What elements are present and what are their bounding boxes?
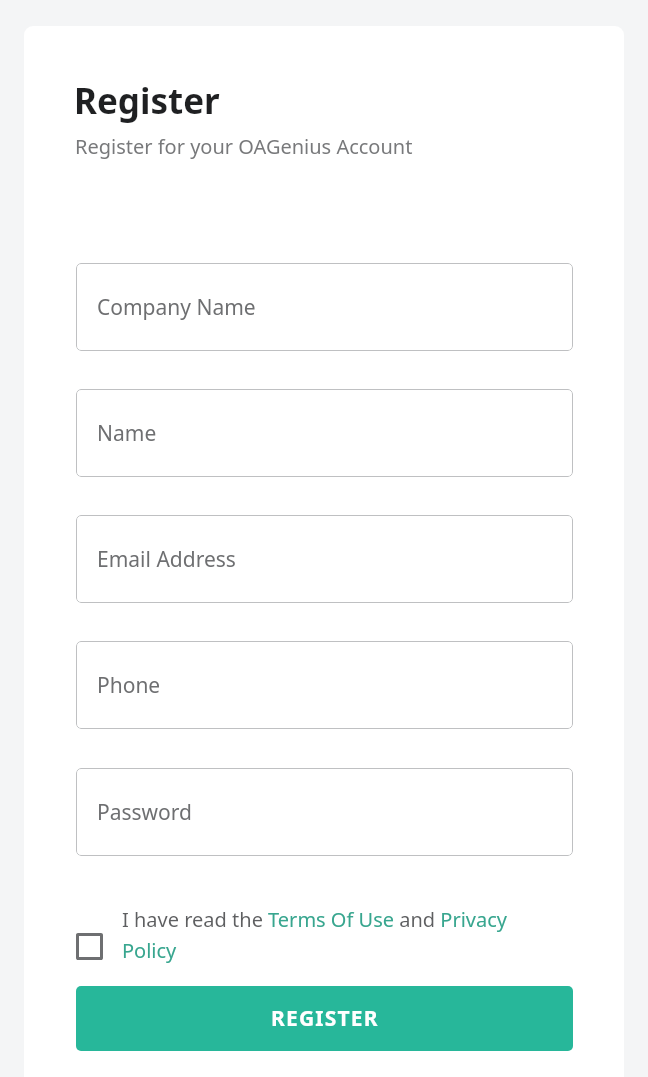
staticText: Phone bbox=[97, 671, 161, 700]
button[interactable]: REGISTER bbox=[76, 986, 573, 1051]
staticText: Name bbox=[97, 419, 157, 448]
staticText: REGISTER bbox=[271, 1004, 379, 1033]
staticText: Password bbox=[97, 798, 192, 827]
button[interactable]: Name bbox=[76, 389, 573, 477]
button[interactable]: Accept terms checkbox bbox=[76, 906, 573, 964]
staticText: Register for your OAGenius Account bbox=[75, 133, 413, 160]
other: Accept terms checkbox bbox=[76, 933, 103, 960]
button[interactable]: Phone bbox=[76, 641, 573, 729]
staticText: Email Address bbox=[97, 545, 236, 574]
button[interactable]: Email Address bbox=[76, 515, 573, 603]
button[interactable]: Password bbox=[76, 768, 573, 856]
button[interactable]: Company Name bbox=[76, 263, 573, 351]
staticText: Company Name bbox=[97, 293, 256, 322]
staticText: Register bbox=[74, 77, 220, 125]
staticText: I have read the Terms Of Use and Privacy… bbox=[122, 906, 542, 964]
